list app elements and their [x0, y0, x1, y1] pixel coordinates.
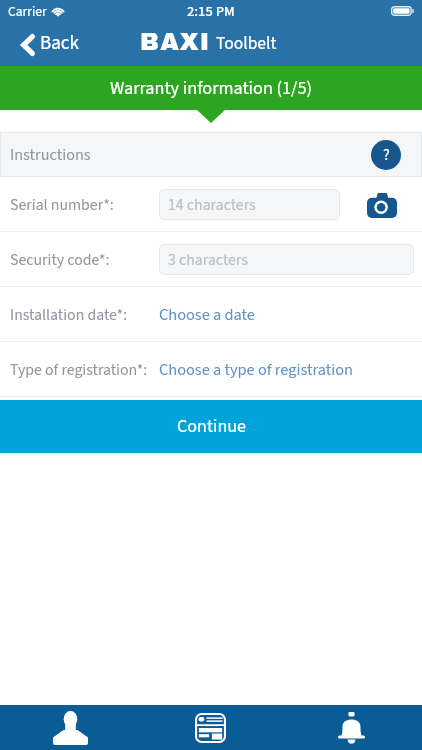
staticText: Continue	[177, 414, 246, 440]
button[interactable]: Take photo	[361, 185, 403, 225]
button[interactable]: Back	[0, 26, 91, 63]
staticText: Security code*:	[10, 249, 110, 271]
button[interactable]: Profile	[0, 705, 140, 750]
staticText: Toolbelt	[216, 31, 277, 56]
button[interactable]: Continue	[0, 400, 422, 453]
button[interactable]: Type of registration*:	[0, 342, 422, 397]
staticText: Serial number*:	[10, 194, 114, 216]
staticText: Choose a date	[159, 303, 255, 326]
staticText: 3 characters	[168, 249, 248, 271]
staticText: Back	[40, 30, 79, 57]
staticText: ?	[383, 144, 390, 167]
button[interactable]: Instructions	[0, 132, 422, 177]
button[interactable]: 14 characters	[159, 189, 340, 220]
staticText: Carrier	[8, 2, 47, 21]
staticText: 2:15 PM	[187, 1, 235, 22]
staticText: Choose a type of registration	[159, 358, 353, 381]
staticText: Installation date*:	[10, 304, 127, 326]
button[interactable]: News	[140, 705, 281, 750]
staticText: Type of registration*:	[10, 359, 148, 381]
button[interactable]: Notifications	[281, 705, 422, 750]
button[interactable]: Help	[371, 140, 401, 170]
button[interactable]: Installation date*:	[0, 287, 422, 342]
staticText: BAXI	[140, 29, 211, 55]
button[interactable]: 3 characters	[159, 244, 414, 275]
staticText: 14 characters	[168, 194, 256, 216]
staticText: Instructions	[10, 143, 91, 166]
staticText: Warranty information (1/5)	[110, 75, 312, 101]
